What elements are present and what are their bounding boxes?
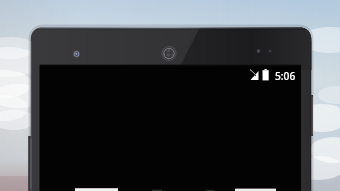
button[interactable]: Phone screen xyxy=(0,0,340,191)
